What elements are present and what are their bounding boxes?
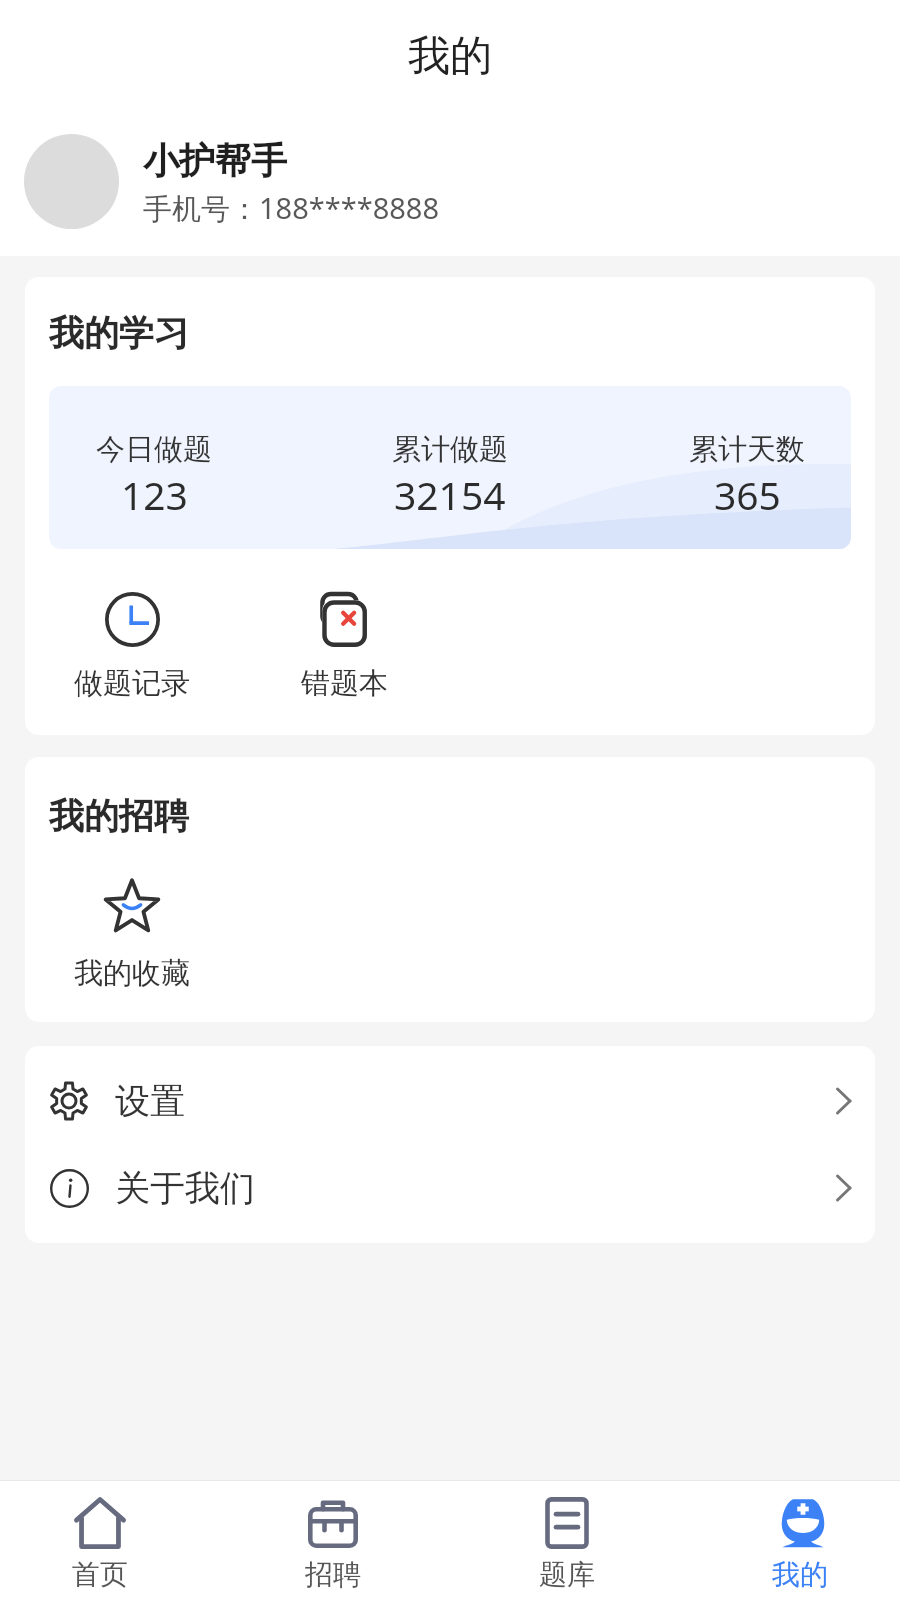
other: 题库	[541, 1497, 593, 1549]
staticText: 设置	[115, 1079, 185, 1123]
button[interactable]: 我的收藏	[49, 880, 215, 992]
button[interactable]: 关于我们	[25, 1144, 875, 1231]
other: 关于我们	[50, 1169, 89, 1208]
button[interactable]: 首页	[0, 1481, 200, 1600]
staticText: 首页	[72, 1557, 128, 1592]
staticText: 手机号：188****8888	[143, 188, 440, 228]
staticText: 错题本	[301, 665, 388, 702]
staticText: 365	[714, 468, 781, 521]
button[interactable]: 我的	[700, 1481, 900, 1600]
staticText: 今日做题	[96, 431, 212, 468]
staticText: 小护帮手	[143, 138, 287, 183]
staticText: 我的收藏	[74, 955, 190, 992]
other: 招聘	[308, 1498, 358, 1548]
button[interactable]: 做题记录	[49, 591, 215, 702]
staticText: 32154	[394, 468, 506, 521]
staticText: 题库	[539, 1557, 595, 1592]
button[interactable]: 错题本	[261, 591, 427, 702]
other: 首页	[74, 1497, 126, 1549]
staticText: 招聘	[305, 1557, 361, 1592]
other: 做题记录	[105, 592, 160, 647]
staticText: 123	[121, 468, 188, 521]
staticText: 做题记录	[74, 665, 190, 702]
staticText: 累计做题	[392, 431, 508, 468]
other: 错题本	[316, 591, 372, 647]
staticText: 我的	[772, 1557, 828, 1592]
button[interactable]: 小护帮手	[0, 112, 900, 256]
staticText: 关于我们	[115, 1166, 255, 1210]
button[interactable]: 招聘	[233, 1481, 433, 1600]
staticText: 我的招聘	[49, 794, 189, 838]
other: 我的收藏	[104, 880, 160, 936]
button[interactable]: 题库	[467, 1481, 667, 1600]
staticText: 累计天数	[689, 431, 805, 468]
other: 设置	[49, 1081, 89, 1121]
button[interactable]: 设置	[25, 1057, 875, 1144]
staticText: 我的	[408, 30, 492, 83]
other: 我的	[778, 1498, 828, 1548]
staticText: 我的学习	[49, 311, 189, 355]
